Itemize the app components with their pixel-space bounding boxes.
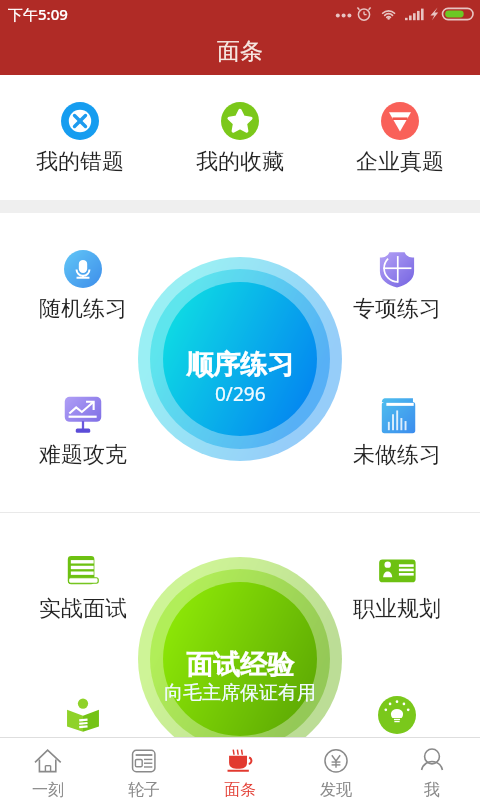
other: 专项练习 <box>378 250 416 288</box>
staticText: 难题攻克 <box>39 441 127 468</box>
button[interactable]: 我的收藏 <box>160 75 320 200</box>
staticText: 专项练习 <box>353 295 441 322</box>
staticText: 下午5:09 <box>8 4 68 24</box>
staticText: 面试经验 <box>186 648 294 682</box>
staticText: 面条 <box>217 37 263 66</box>
staticText: 实战面试 <box>39 595 127 622</box>
button[interactable] <box>163 282 317 436</box>
staticText: 0/296 <box>215 381 266 407</box>
button[interactable]: 企业真题 <box>320 75 480 200</box>
other: 随机练习 <box>64 250 102 288</box>
other: 我的收藏 <box>221 102 259 140</box>
staticText: 发现 <box>320 780 352 800</box>
button[interactable]: 技巧 <box>337 513 457 737</box>
button[interactable]: 面条 <box>192 738 288 800</box>
staticText: 我 <box>424 780 440 800</box>
other: 难题攻克 <box>64 396 102 434</box>
staticText: 未做练习 <box>353 441 441 468</box>
other: 我的错题 <box>61 102 99 140</box>
button[interactable]: 职业规划 <box>337 513 457 622</box>
button[interactable]: 专项练习 <box>337 213 457 322</box>
staticText: 我的错题 <box>36 148 124 176</box>
other: 职业规划 <box>378 550 416 588</box>
button[interactable]: 一刻 <box>0 738 96 800</box>
staticText: 随机练习 <box>39 295 127 322</box>
button[interactable]: 轮子 <box>96 738 192 800</box>
staticText: 职业规划 <box>353 595 441 622</box>
button[interactable]: 发现 <box>288 738 384 800</box>
staticText: 面条 <box>224 780 256 800</box>
button[interactable]: 学习 <box>23 513 143 737</box>
button[interactable]: 我的错题 <box>0 75 160 200</box>
staticText: 我的收藏 <box>196 148 284 176</box>
staticText: 企业真题 <box>356 148 444 176</box>
staticText: 一刻 <box>32 780 64 800</box>
button[interactable]: 随机练习 <box>23 213 143 322</box>
other: 技巧 <box>378 696 416 734</box>
other: 企业真题 <box>381 102 419 140</box>
other: 未做练习 <box>378 396 416 434</box>
button[interactable]: 实战面试 <box>23 513 143 622</box>
other: 学习 <box>64 696 102 734</box>
staticText: 向毛主席保证有用 <box>164 681 316 705</box>
button[interactable]: 我 <box>384 738 480 800</box>
other: 实战面试 <box>64 550 102 588</box>
button[interactable]: 未做练习 <box>337 213 457 468</box>
button[interactable] <box>163 582 317 736</box>
button[interactable]: 难题攻克 <box>23 213 143 468</box>
staticText: 顺序练习 <box>186 348 294 382</box>
staticText: 轮子 <box>128 780 160 800</box>
